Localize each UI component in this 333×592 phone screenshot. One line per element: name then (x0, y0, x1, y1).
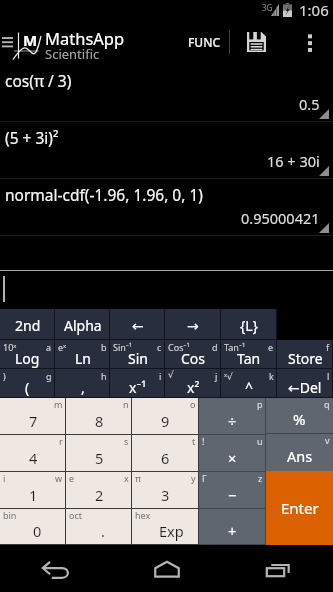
staticText: 10ˣ (3, 341, 17, 353)
staticText: cos(π / 3) (5, 70, 72, 91)
button[interactable]: Γ (199, 472, 266, 509)
button[interactable]: o (132, 398, 199, 435)
button[interactable]: r (0, 435, 66, 472)
staticText: normal-cdf(-1.96, 1.96, 0, 1) (5, 184, 203, 205)
button[interactable]: Sin⁻¹ (110, 340, 165, 369)
button[interactable]: √ (165, 369, 221, 398)
staticText: o (190, 398, 196, 410)
staticText: FUNC (188, 34, 221, 50)
staticText: bin (3, 509, 17, 521)
staticText: y (191, 472, 196, 484)
staticText: 1:06 (299, 0, 329, 19)
button[interactable]: m (0, 398, 66, 435)
staticText: Cos⁻¹ (168, 341, 190, 353)
button[interactable]: → (165, 309, 221, 340)
staticText: i (159, 370, 162, 382)
button[interactable]: Enter (266, 471, 333, 545)
button[interactable]: Home (111, 545, 222, 592)
button[interactable]: ! (199, 435, 266, 472)
button[interactable]: Back (0, 545, 111, 592)
staticText: g (46, 370, 52, 382)
staticText: ( (25, 378, 30, 397)
button[interactable]: i (0, 472, 66, 509)
staticText: r (59, 435, 63, 447)
button[interactable]: {L} (221, 309, 277, 340)
button[interactable]: t (132, 435, 199, 472)
button[interactable]: 2nd (0, 309, 55, 340)
staticText: {L} (240, 316, 258, 335)
staticText: 1 (29, 485, 38, 505)
staticText: % (293, 409, 306, 429)
button[interactable]: s (66, 435, 132, 472)
staticText: h (101, 370, 107, 382)
staticText: s (124, 435, 129, 447)
staticText: 0.95000421 (241, 208, 320, 228)
button[interactable]: 10ˣ (0, 340, 55, 369)
button[interactable]: More options (287, 19, 333, 65)
staticText: √ (168, 370, 174, 380)
staticText: b (101, 341, 107, 353)
staticText: Enter (281, 498, 319, 518)
button[interactable]: MathsApp Scientific, open navigation dra… (0, 19, 140, 65)
button[interactable]: Tan⁻¹ (221, 340, 277, 369)
staticText: 4 (29, 448, 38, 468)
staticText: x (124, 472, 129, 484)
staticText: . (101, 521, 105, 541)
button[interactable]: Alpha (55, 309, 110, 340)
staticText: 16 + 30i (267, 151, 320, 171)
button[interactable]: FUNC (178, 19, 230, 65)
button[interactable]: oct (66, 509, 132, 545)
staticText: e (268, 341, 274, 353)
staticText: ˣ√ (224, 370, 233, 382)
button[interactable]: eˣ (55, 340, 110, 369)
staticText: l (327, 370, 330, 382)
button[interactable]: hex (132, 509, 199, 545)
staticText: 0.5 (299, 94, 320, 114)
button[interactable]: ← (110, 309, 165, 340)
staticText: MathsApp (45, 27, 125, 49)
staticText: π (135, 472, 141, 484)
staticText: Γ (202, 472, 207, 484)
staticText: ^ (245, 378, 254, 397)
button[interactable]: Save (237, 19, 275, 65)
staticText: Store (288, 349, 323, 368)
button[interactable]: π (132, 472, 199, 509)
staticText: eˣ (58, 341, 67, 353)
button[interactable]: ) (0, 369, 55, 398)
button[interactable]: bin (0, 509, 66, 545)
button[interactable]: normal-cdf(-1.96, 1.96, 0, 1) (0, 179, 333, 236)
staticText: m (54, 398, 63, 410)
button[interactable]: + (199, 509, 266, 545)
staticText: 9 (161, 411, 170, 431)
button[interactable]: h (55, 369, 110, 398)
staticText: ) (3, 370, 6, 382)
button[interactable]: q (266, 398, 333, 434)
staticText: ÷ (228, 411, 237, 431)
staticText: Ans (287, 446, 313, 466)
button[interactable]: Recent apps (222, 545, 333, 592)
button[interactable]: (5 + 3i)² (0, 122, 333, 179)
button[interactable]: p (199, 398, 266, 435)
button[interactable]: n (66, 398, 132, 435)
staticText: Scientific (45, 45, 100, 63)
staticText: 3 (161, 485, 170, 505)
staticText: x⁻¹ (129, 378, 147, 397)
button[interactable]: e (66, 472, 132, 509)
staticText: ← (132, 318, 144, 334)
staticText: f (326, 341, 330, 353)
staticText: ! (202, 435, 205, 447)
staticText: Sin⁻¹ (113, 341, 133, 353)
button[interactable]: Cos⁻¹ (165, 340, 221, 369)
staticText: i (3, 472, 6, 484)
staticText: Sin (128, 349, 148, 368)
button[interactable]: i (110, 369, 165, 398)
staticText: oct (69, 509, 83, 521)
button[interactable]: cos(π / 3) (0, 65, 333, 122)
button[interactable]: l (277, 369, 333, 398)
button[interactable]: f (277, 340, 333, 369)
staticText: → (187, 318, 199, 334)
staticText: a (46, 341, 52, 353)
button[interactable]: v (266, 434, 333, 471)
button[interactable]: ˣ√ (221, 369, 277, 398)
